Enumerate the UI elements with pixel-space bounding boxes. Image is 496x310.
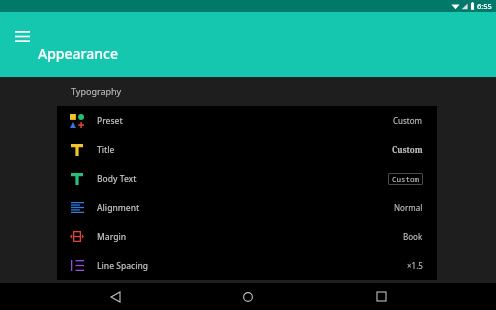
staticText: 6:55 bbox=[477, 1, 492, 11]
button[interactable]: Body Text bbox=[57, 164, 437, 193]
staticText: Book bbox=[403, 231, 423, 242]
staticText: Title bbox=[97, 144, 115, 156]
staticText: Body Text bbox=[97, 173, 137, 185]
button[interactable]: Recent apps bbox=[363, 283, 399, 310]
staticText: Normal bbox=[394, 202, 423, 213]
button[interactable]: Preset bbox=[57, 106, 437, 135]
button[interactable]: Back bbox=[97, 283, 133, 310]
staticText: ×1.5 bbox=[407, 260, 423, 271]
staticText: Margin bbox=[97, 231, 127, 243]
staticText: Alignment bbox=[97, 202, 140, 214]
button[interactable]: Alignment bbox=[57, 193, 437, 222]
staticText: Line Spacing bbox=[97, 260, 149, 272]
button[interactable]: Line Spacing bbox=[57, 251, 437, 280]
button[interactable]: Title bbox=[57, 135, 437, 164]
staticText: Custom bbox=[392, 144, 423, 155]
button[interactable]: Margin bbox=[57, 222, 437, 251]
button[interactable]: Open navigation menu bbox=[8, 22, 36, 50]
staticText: Custom bbox=[393, 115, 423, 126]
staticText: Preset bbox=[97, 115, 123, 127]
staticText: Appearance bbox=[38, 44, 118, 63]
staticText: Custom bbox=[392, 174, 419, 184]
staticText: Typography bbox=[71, 85, 122, 97]
button[interactable]: Home bbox=[230, 283, 266, 310]
